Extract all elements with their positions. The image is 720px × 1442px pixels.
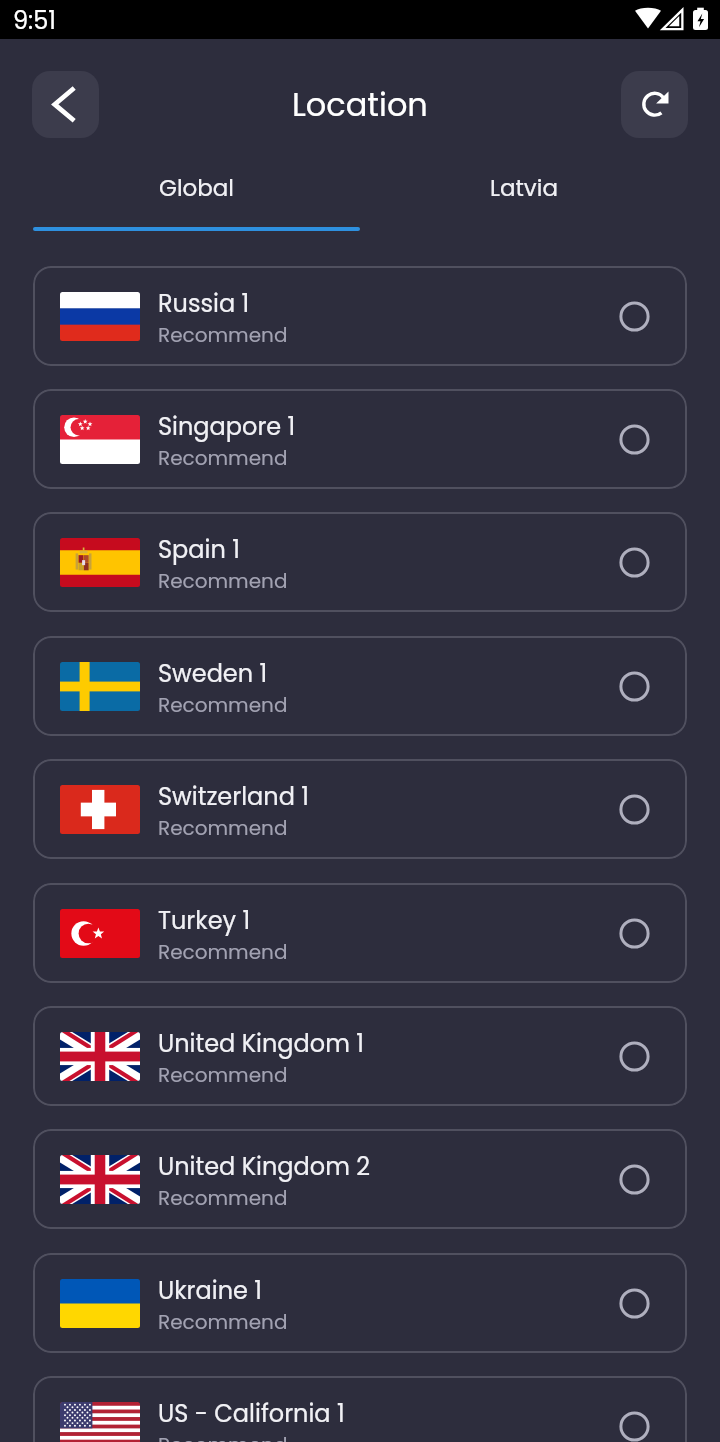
- staticText: Recommend: [158, 1308, 288, 1336]
- staticText: Location: [292, 82, 428, 127]
- button[interactable]: US - California 1: [33, 1376, 687, 1442]
- button[interactable]: Switzerland 1: [33, 759, 687, 859]
- button[interactable]: Latvia: [360, 161, 687, 214]
- staticText: Singapore 1: [158, 410, 296, 444]
- button[interactable]: Russia 1: [33, 266, 687, 366]
- staticText: Recommend: [158, 1431, 288, 1442]
- staticText: Ukraine 1: [158, 1274, 262, 1308]
- staticText: United Kingdom 1: [158, 1027, 364, 1061]
- button[interactable]: Turkey 1: [33, 883, 687, 983]
- button[interactable]: Ukraine 1: [33, 1253, 687, 1353]
- staticText: 9:51: [13, 4, 56, 38]
- staticText: Spain 1: [158, 533, 240, 567]
- staticText: Switzerland 1: [158, 780, 309, 814]
- staticText: Russia 1: [158, 287, 250, 321]
- staticText: Turkey 1: [158, 904, 251, 938]
- staticText: Recommend: [158, 567, 288, 595]
- staticText: Recommend: [158, 1184, 288, 1212]
- staticText: Recommend: [158, 938, 288, 966]
- button[interactable]: United Kingdom 1: [33, 1006, 687, 1106]
- staticText: Recommend: [158, 321, 288, 349]
- staticText: Global: [159, 172, 235, 204]
- button[interactable]: Refresh: [621, 71, 688, 138]
- button[interactable]: Back: [32, 71, 99, 138]
- staticText: Recommend: [158, 444, 288, 472]
- staticText: US - California 1: [158, 1397, 345, 1431]
- button[interactable]: Sweden 1: [33, 636, 687, 736]
- staticText: Recommend: [158, 814, 288, 842]
- button[interactable]: United Kingdom 2: [33, 1129, 687, 1229]
- staticText: Sweden 1: [158, 657, 268, 691]
- staticText: Latvia: [490, 172, 558, 204]
- button[interactable]: Spain 1: [33, 512, 687, 612]
- staticText: Recommend: [158, 691, 288, 719]
- staticText: United Kingdom 2: [158, 1150, 371, 1184]
- staticText: Recommend: [158, 1061, 288, 1089]
- button[interactable]: Singapore 1: [33, 389, 687, 489]
- button[interactable]: Global: [33, 161, 360, 214]
